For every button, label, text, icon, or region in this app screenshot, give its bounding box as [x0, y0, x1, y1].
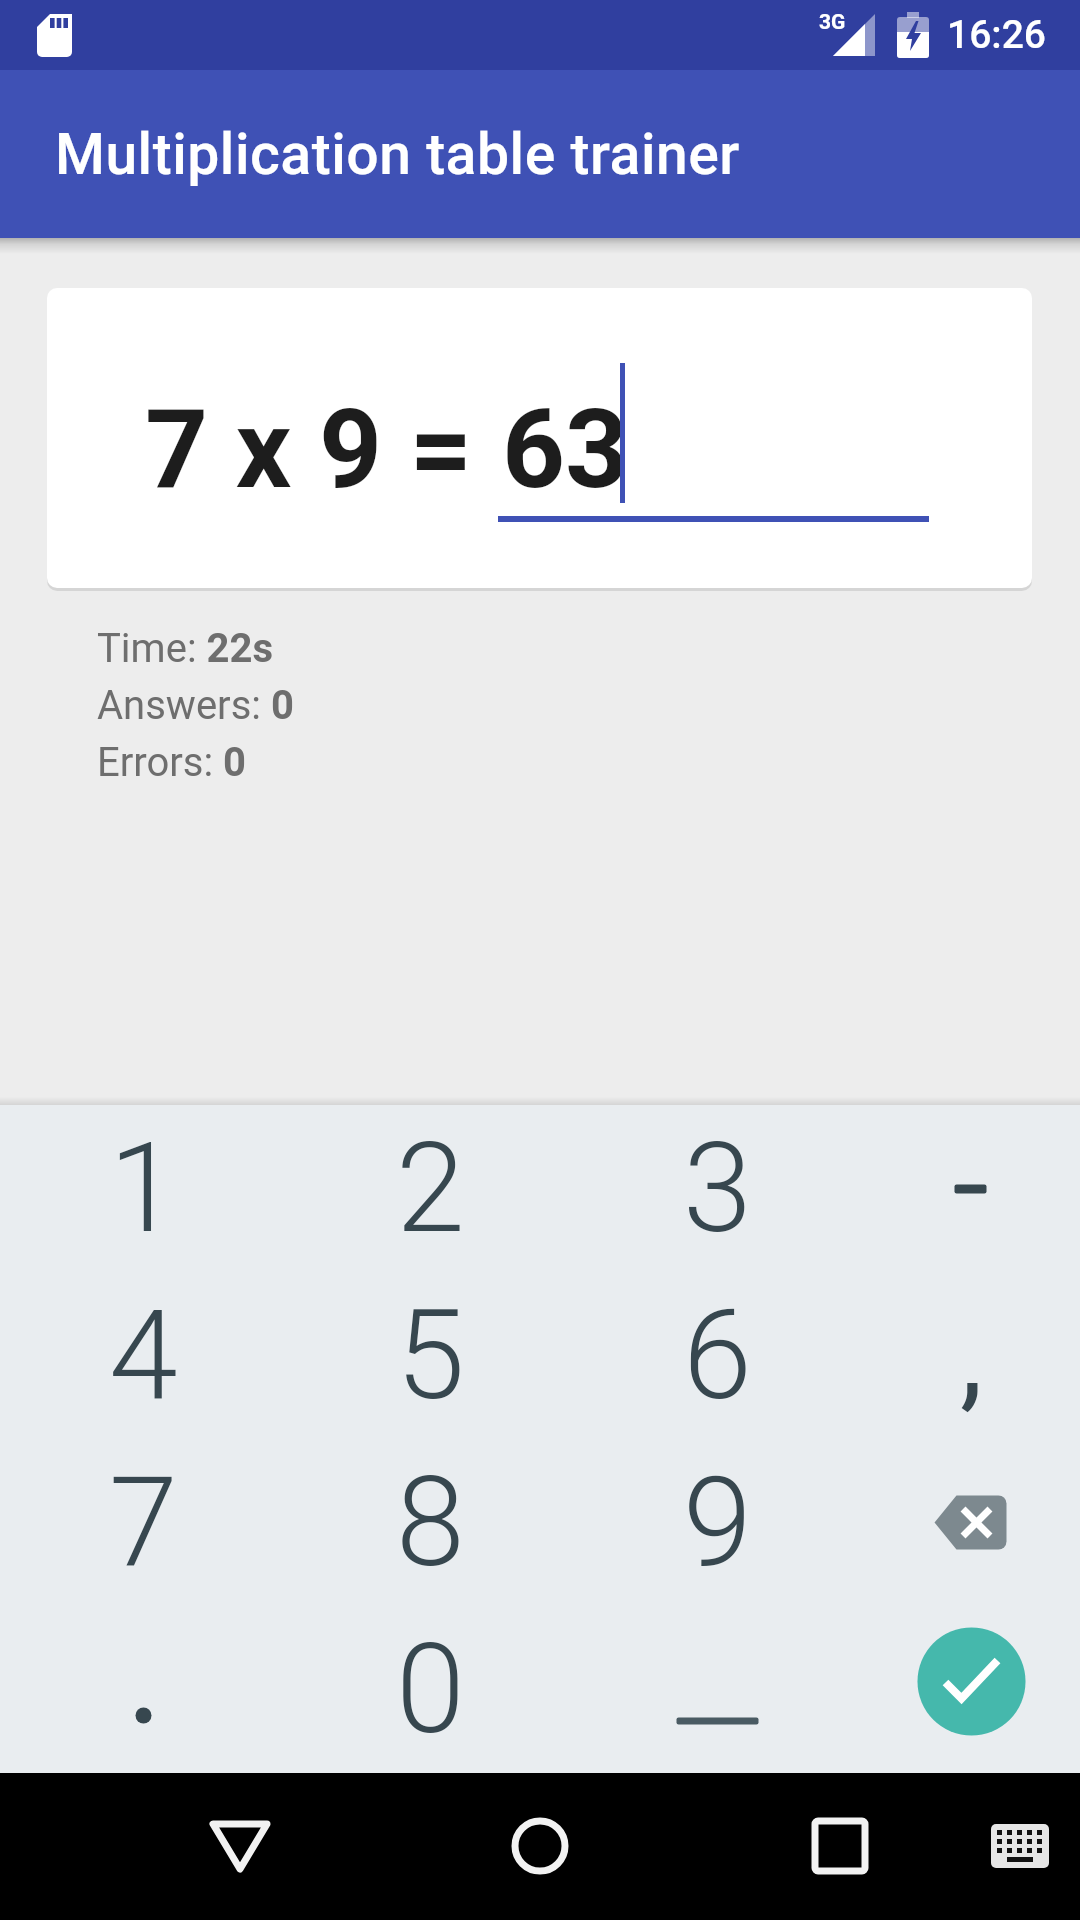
button[interactable]: 0: [287, 1606, 574, 1773]
staticText: 0: [396, 1617, 465, 1762]
button[interactable]: [480, 1786, 600, 1906]
staticText: Multiplication table trainer: [55, 121, 740, 188]
button[interactable]: [574, 1606, 861, 1773]
staticText: Answers: 0: [97, 682, 294, 729]
staticText: 8: [396, 1450, 465, 1595]
button[interactable]: 7 x 9 =: [47, 288, 1032, 588]
staticText: 7: [109, 1450, 178, 1595]
button[interactable]: [966, 1786, 1074, 1894]
button[interactable]: 9: [574, 1439, 861, 1606]
staticText: Time: 22s: [97, 625, 273, 672]
button[interactable]: 8: [287, 1439, 574, 1606]
staticText: 3G: [819, 10, 846, 35]
button[interactable]: 5: [287, 1272, 574, 1439]
staticText: 9: [683, 1450, 752, 1595]
button[interactable]: [861, 1439, 1080, 1606]
button[interactable]: [780, 1786, 900, 1906]
staticText: 3: [683, 1116, 752, 1261]
staticText: 63: [502, 385, 629, 514]
button[interactable]: [861, 1606, 1080, 1773]
staticText: 5: [396, 1283, 465, 1428]
button[interactable]: 6: [574, 1272, 861, 1439]
staticText: 2: [396, 1116, 465, 1261]
button[interactable]: 1: [0, 1105, 287, 1272]
button[interactable]: 2: [287, 1105, 574, 1272]
staticText: 1: [109, 1116, 178, 1261]
button[interactable]: [180, 1786, 300, 1906]
staticText: 7 x 9 =: [145, 385, 473, 514]
button[interactable]: 7: [0, 1439, 287, 1606]
staticText: 6: [683, 1283, 752, 1428]
button[interactable]: 3: [574, 1105, 861, 1272]
staticText: 4: [109, 1283, 178, 1428]
staticText: Errors: 0: [97, 739, 247, 786]
button[interactable]: ,: [861, 1272, 1080, 1439]
staticText: ,: [960, 1288, 983, 1424]
button[interactable]: [861, 1105, 1080, 1272]
button[interactable]: 4: [0, 1272, 287, 1439]
button[interactable]: [0, 1606, 287, 1773]
staticText: 16:26: [947, 12, 1047, 58]
